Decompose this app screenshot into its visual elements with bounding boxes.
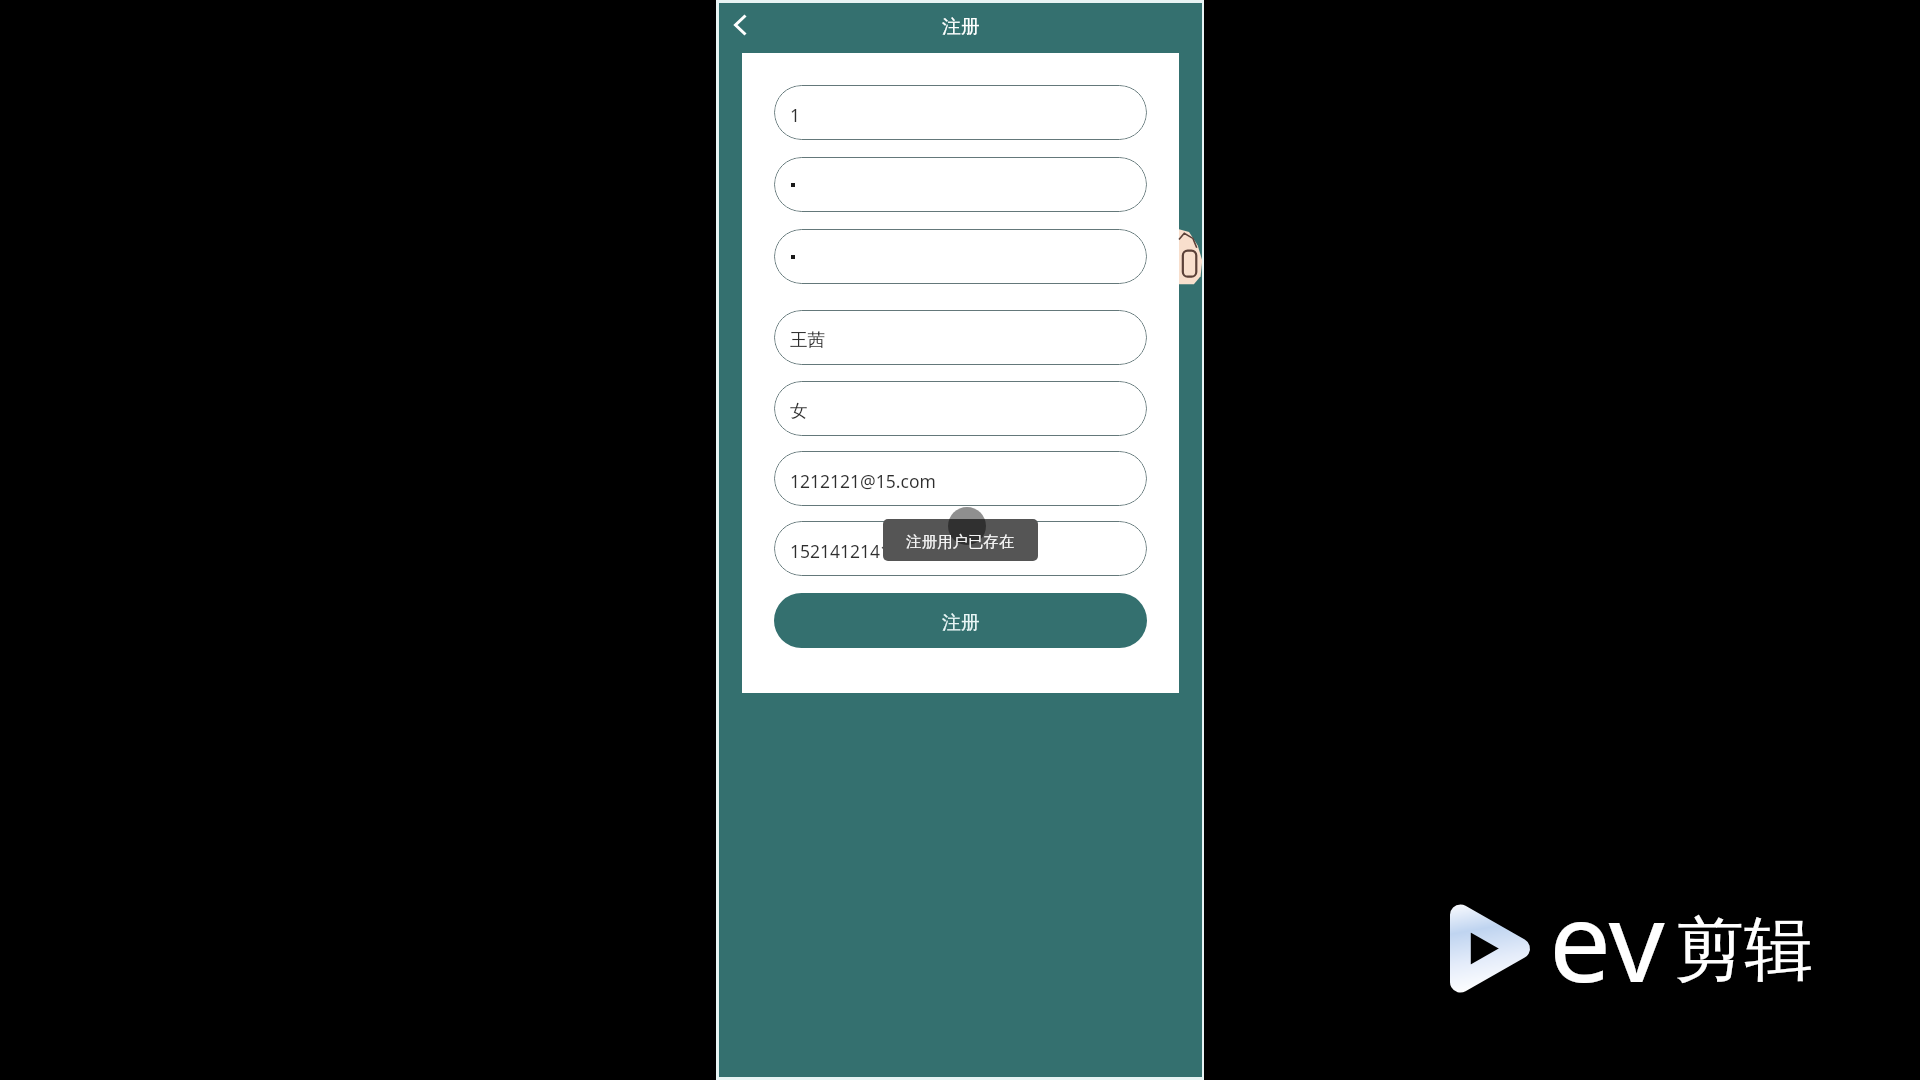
button[interactable]: 1212121@15.com: [774, 451, 1147, 506]
staticText: 注册用户已存在: [906, 532, 1015, 552]
staticText: ev: [1549, 864, 1665, 1014]
staticText: 注册: [942, 611, 980, 635]
button[interactable]: 注册: [774, 593, 1147, 648]
button[interactable]: 王茜: [774, 310, 1147, 365]
staticText: 剪辑: [1675, 907, 1813, 994]
button[interactable]: 确认密码: [774, 229, 1147, 284]
staticText: 15214121411: [790, 539, 901, 563]
staticText: 注册: [942, 15, 980, 39]
button[interactable]: 女: [774, 381, 1147, 436]
staticText: 1: [790, 103, 801, 127]
staticText: 女: [790, 400, 808, 422]
button[interactable]: 密码: [774, 157, 1147, 212]
button[interactable]: Back: [717, 2, 763, 48]
button[interactable]: 1: [774, 85, 1147, 140]
staticText: 1212121@15.com: [790, 469, 936, 493]
button[interactable]: 15214121411: [774, 521, 1147, 576]
staticText: 王茜: [790, 329, 825, 351]
